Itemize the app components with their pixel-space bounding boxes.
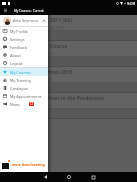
staticText: About bbox=[10, 53, 21, 58]
button[interactable]: Alex Seymour bbox=[0, 15, 48, 26]
button[interactable]: Home bbox=[61, 172, 77, 182]
staticText: Feedback bbox=[10, 45, 27, 50]
staticText: Conducted on 01.12.2016 bbox=[4, 103, 52, 108]
staticText: Registration ends on 21.06.2016 bbox=[4, 25, 65, 30]
button[interactable]: Settings bbox=[0, 35, 48, 43]
staticText: more than learning bbox=[12, 162, 45, 167]
staticText: Settings bbox=[10, 37, 25, 42]
button[interactable]: Logout bbox=[0, 59, 48, 67]
button[interactable]: Training for New Hires 2016 bbox=[0, 67, 137, 93]
button[interactable]: My Training bbox=[0, 76, 48, 84]
button[interactable]: Recents bbox=[85, 172, 101, 182]
staticText: My Profile bbox=[10, 29, 28, 34]
staticText: 12 bbox=[30, 102, 33, 106]
button[interactable]: Business English I 2011 (A2) bbox=[0, 15, 137, 41]
staticText: News bbox=[10, 102, 20, 107]
staticText: Business English I 2011 (A2) bbox=[4, 17, 73, 24]
button[interactable]: My Appointments bbox=[0, 92, 48, 100]
staticText: Conducted on 01.12.2016 bbox=[4, 77, 52, 82]
button[interactable]: My Profile bbox=[0, 27, 48, 35]
button[interactable]: Basic Life Support Course bbox=[0, 41, 137, 67]
button[interactable]: My Courses bbox=[0, 68, 48, 76]
staticText: Training for New Hires 2016 bbox=[4, 69, 73, 76]
button[interactable]: Open navigation drawer bbox=[1, 6, 10, 15]
staticText: My Appointments bbox=[10, 94, 42, 99]
staticText: BOOKED bbox=[4, 58, 21, 63]
staticText: Basic Life Support Course bbox=[4, 43, 68, 50]
staticText: My Courses : Current bbox=[14, 9, 44, 13]
staticText: PASSED bbox=[4, 84, 19, 89]
button[interactable]: Catalogue bbox=[0, 84, 48, 92]
button[interactable]: News bbox=[0, 100, 48, 108]
staticText: My Courses bbox=[10, 70, 31, 75]
button[interactable]: Training for New Hires in the Production bbox=[0, 93, 137, 119]
staticText: Training for New Hires in the Production bbox=[4, 95, 105, 102]
button[interactable]: About bbox=[0, 51, 48, 59]
staticText: Alex Seymour bbox=[13, 18, 39, 23]
staticText: 9:09 bbox=[127, 1, 135, 6]
staticText: My Training bbox=[10, 78, 31, 83]
staticText: Logout bbox=[10, 61, 23, 66]
button[interactable]: Back bbox=[37, 172, 53, 182]
staticText: Catalogue bbox=[10, 86, 29, 91]
button[interactable]: Feedback bbox=[0, 43, 48, 51]
staticText: Takes place on 21.06.2016 bbox=[4, 51, 53, 56]
staticText: BOOKED bbox=[4, 32, 21, 37]
